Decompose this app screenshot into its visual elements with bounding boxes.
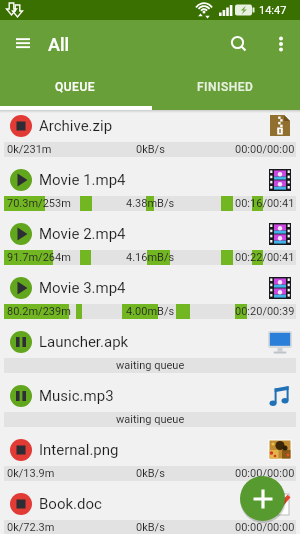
staticText: FINISHED <box>197 80 254 94</box>
staticText: 80.2m/239m <box>7 305 71 318</box>
staticText: Archive.zip <box>39 117 113 135</box>
staticText: QUEUE <box>55 80 96 94</box>
staticText: 0k/13.9m <box>7 467 55 480</box>
staticText: 0kB/s <box>136 467 165 480</box>
staticText: 0kB/s <box>136 521 165 534</box>
staticText: 00:20/00:39 <box>235 305 295 318</box>
staticText: 0k/231m <box>7 143 52 156</box>
button[interactable]: FINISHED <box>150 66 300 110</box>
staticText: 00:16/00:41 <box>235 197 295 210</box>
button[interactable]: Book.doc <box>0 488 300 534</box>
staticText: Movie 3.mp4 <box>39 279 126 297</box>
staticText: 0kB/s <box>136 143 165 156</box>
staticText: 14:47 <box>259 4 287 17</box>
staticText: 00:00/00:00 <box>235 467 295 480</box>
button[interactable]: Internal.png <box>0 434 300 488</box>
staticText: Movie 1.mp4 <box>39 171 126 189</box>
staticText: 00:22/00:41 <box>235 251 295 264</box>
staticText: Movie 2.mp4 <box>39 225 126 243</box>
button[interactable]: Movie 2.mp4 <box>0 218 300 272</box>
button[interactable] <box>3 24 43 64</box>
button[interactable]: Music.mp3 <box>0 380 300 434</box>
button[interactable] <box>240 476 285 521</box>
staticText: Internal.png <box>39 441 119 459</box>
button[interactable] <box>7 274 35 302</box>
button[interactable]: Movie 3.mp4 <box>0 272 300 326</box>
staticText: 4.38mB/s <box>126 197 175 210</box>
staticText: Book.doc <box>39 495 102 513</box>
button[interactable] <box>7 166 35 194</box>
button[interactable] <box>7 328 35 356</box>
staticText: waiting queue <box>116 413 185 426</box>
button[interactable]: Launcher.apk <box>0 326 300 380</box>
button[interactable] <box>7 382 35 410</box>
button[interactable] <box>7 112 35 140</box>
staticText: 00:00/00:00 <box>235 521 295 534</box>
staticText: All <box>48 34 70 55</box>
staticText: 70.3m/253m <box>7 197 71 210</box>
staticText: 4.00mB/s <box>126 305 175 318</box>
button[interactable]: Archive.zip <box>0 110 300 164</box>
button[interactable] <box>7 220 35 248</box>
staticText: 00:00/00:00 <box>235 143 295 156</box>
button[interactable]: Movie 1.mp4 <box>0 164 300 218</box>
staticText: 4.16mB/s <box>126 251 175 264</box>
button[interactable] <box>7 490 35 518</box>
staticText: 91.7m/264m <box>7 251 71 264</box>
staticText: waiting queue <box>116 359 185 372</box>
button[interactable] <box>264 27 298 61</box>
staticText: Music.mp3 <box>39 387 114 405</box>
button[interactable] <box>219 24 259 64</box>
button[interactable] <box>7 436 35 464</box>
button[interactable]: QUEUE <box>0 66 150 110</box>
staticText: 0k/72.3m <box>7 521 55 534</box>
staticText: Launcher.apk <box>39 333 129 351</box>
